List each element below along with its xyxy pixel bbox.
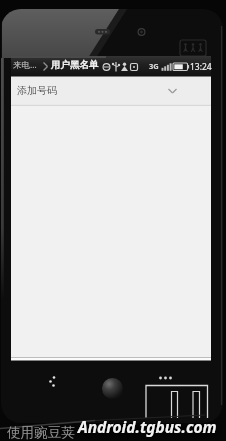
staticText: 来电…: [13, 59, 37, 71]
staticText: Android.tgbus.com: [78, 416, 217, 437]
staticText: 用户黑名单: [51, 59, 99, 71]
staticText: 添加号码: [17, 84, 57, 97]
staticText: 使用豌豆荚: [7, 424, 75, 441]
staticText: 13:24: [190, 61, 212, 73]
staticText: 3G: [149, 61, 159, 71]
